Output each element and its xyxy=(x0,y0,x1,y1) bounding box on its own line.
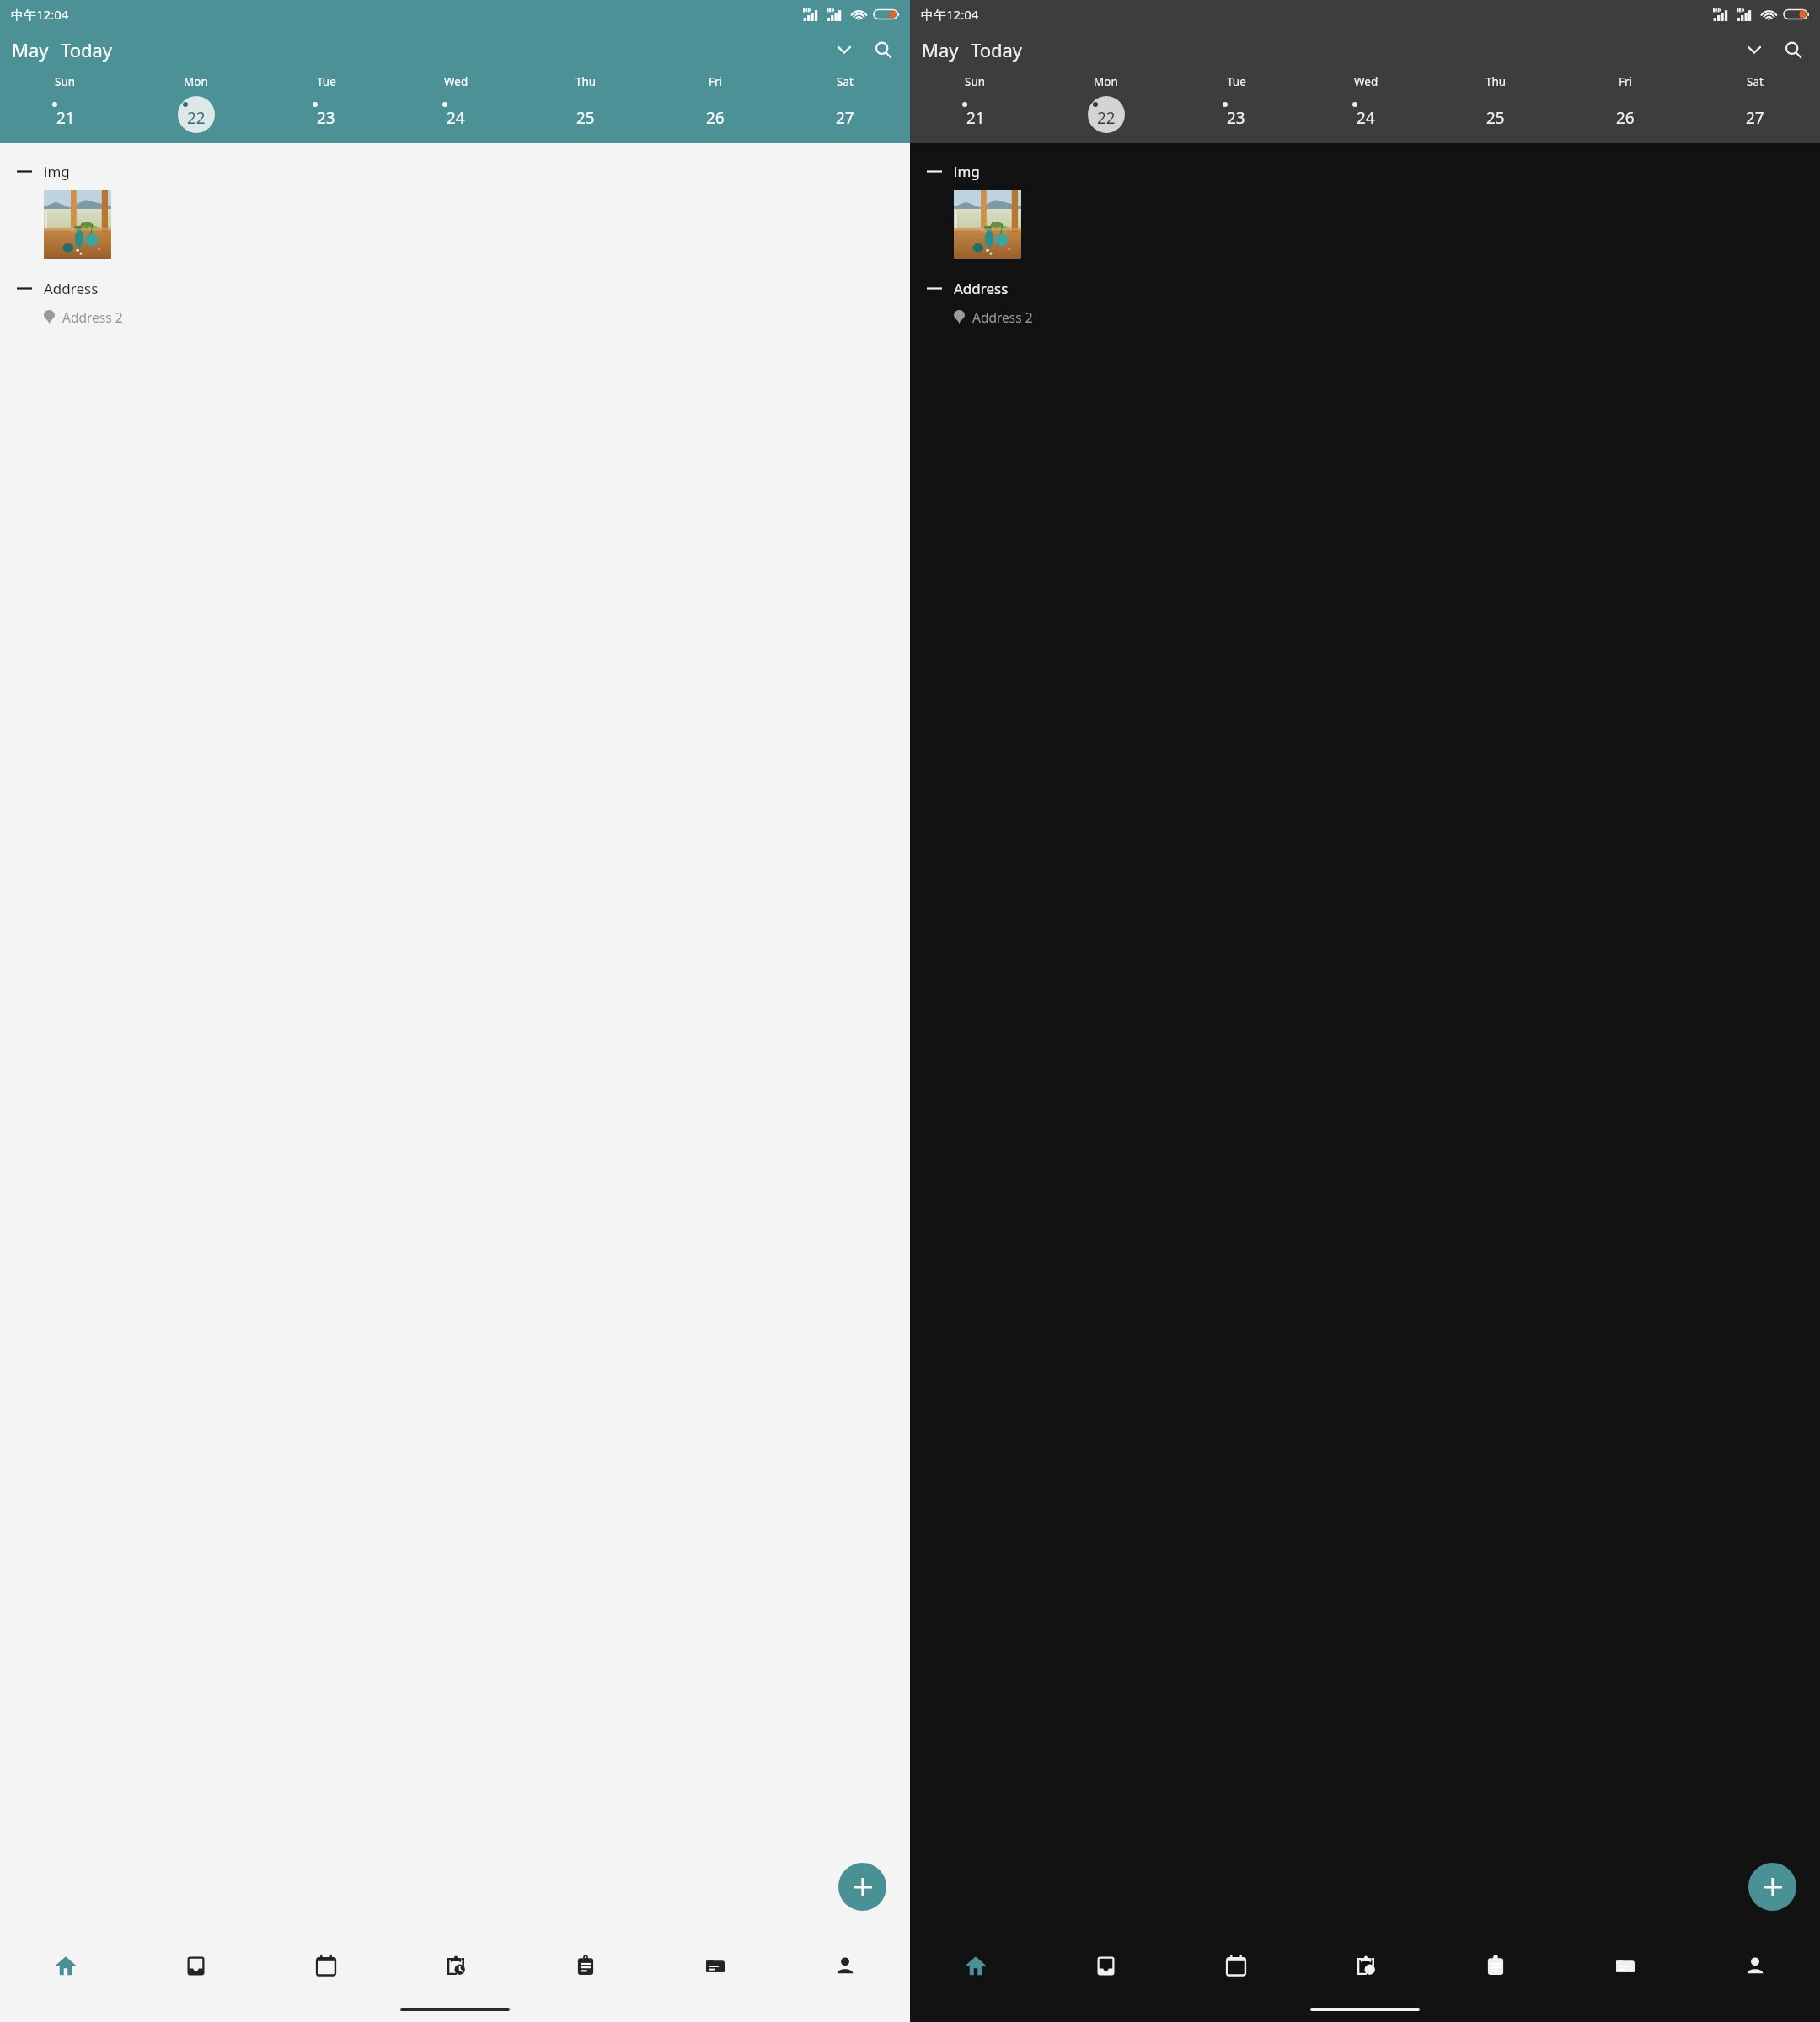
staticText: Sun xyxy=(55,74,76,89)
button[interactable]: Address xyxy=(0,277,910,300)
button[interactable]: 27 xyxy=(1690,94,1820,135)
staticText: Wed xyxy=(444,74,468,89)
button[interactable]: Address 2 xyxy=(0,307,910,328)
staticText: Today xyxy=(61,37,113,62)
staticText: 22 xyxy=(1097,107,1116,129)
button[interactable]: Add event xyxy=(1748,1863,1796,1911)
button[interactable]: 27 xyxy=(780,94,910,135)
staticText: 25 xyxy=(1486,107,1505,129)
staticText: Mon xyxy=(1094,74,1118,89)
staticText: 27 xyxy=(1746,107,1764,129)
button[interactable]: 25 xyxy=(1431,94,1560,135)
button[interactable]: Expand calendar xyxy=(827,33,861,67)
staticText: Fri xyxy=(1619,74,1633,89)
button[interactable]: Calendar xyxy=(261,1934,391,1997)
staticText: 23 xyxy=(317,107,335,129)
button[interactable]: 23 xyxy=(261,94,391,135)
staticText: 26 xyxy=(1616,107,1635,129)
button[interactable]: 22 xyxy=(131,94,261,135)
button[interactable]: Search xyxy=(866,33,900,67)
staticText: Tue xyxy=(317,74,336,89)
button[interactable]: 26 xyxy=(650,94,780,135)
staticText: Sat xyxy=(837,74,854,89)
staticText: 中午12:04 xyxy=(921,6,979,23)
button[interactable]: Search xyxy=(1776,33,1810,67)
button[interactable]: 21 xyxy=(910,94,1041,135)
staticText: 27 xyxy=(836,107,854,129)
staticText: Tue xyxy=(1227,74,1246,89)
button[interactable]: 24 xyxy=(1301,94,1431,135)
button[interactable]: 26 xyxy=(1560,94,1690,135)
staticText: 21 xyxy=(966,107,985,129)
button[interactable]: Inbox xyxy=(131,1934,261,1997)
button[interactable]: May xyxy=(920,37,1025,62)
button[interactable]: Profile xyxy=(780,1934,910,1997)
staticText: Mon xyxy=(184,74,208,89)
staticText: 24 xyxy=(447,107,465,129)
button[interactable]: Pending tasks xyxy=(1301,1934,1431,1997)
staticText: Address 2 xyxy=(972,308,1033,326)
button[interactable] xyxy=(44,190,111,259)
button[interactable]: 23 xyxy=(1171,94,1301,135)
button[interactable]: 24 xyxy=(391,94,521,135)
button[interactable]: Address xyxy=(910,277,1820,300)
staticText: Fri xyxy=(709,74,723,89)
staticText: Today xyxy=(971,37,1023,62)
button[interactable]: img xyxy=(0,155,910,183)
staticText: 中午12:04 xyxy=(11,6,69,23)
staticText: Address xyxy=(44,279,99,298)
button[interactable]: Files xyxy=(650,1934,780,1997)
staticText: 22 xyxy=(187,107,206,129)
staticText: May xyxy=(922,37,959,62)
staticText: Sun xyxy=(965,74,986,89)
button[interactable]: img xyxy=(910,155,1820,183)
button[interactable]: 25 xyxy=(521,94,650,135)
button[interactable]: Tasks xyxy=(1431,1934,1560,1997)
staticText: img xyxy=(44,162,70,181)
button[interactable]: Expand calendar xyxy=(1737,33,1771,67)
staticText: 24 xyxy=(1357,107,1375,129)
button[interactable]: Home xyxy=(0,1934,131,1997)
button[interactable]: Address 2 xyxy=(910,307,1820,328)
staticText: Address 2 xyxy=(62,308,123,326)
button[interactable]: Add event xyxy=(838,1863,886,1911)
button[interactable] xyxy=(954,190,1021,259)
staticText: Wed xyxy=(1354,74,1378,89)
staticText: Sat xyxy=(1747,74,1764,89)
staticText: May xyxy=(12,37,49,62)
button[interactable]: Tasks xyxy=(521,1934,650,1997)
button[interactable]: 22 xyxy=(1041,94,1171,135)
button[interactable]: Home xyxy=(910,1934,1041,1997)
button[interactable]: Files xyxy=(1560,1934,1690,1997)
button[interactable]: 21 xyxy=(0,94,131,135)
staticText: 26 xyxy=(706,107,725,129)
button[interactable]: Pending tasks xyxy=(391,1934,521,1997)
staticText: Thu xyxy=(575,74,597,89)
button[interactable]: Inbox xyxy=(1041,1934,1171,1997)
button[interactable]: Profile xyxy=(1690,1934,1820,1997)
staticText: Address xyxy=(954,279,1009,298)
staticText: 23 xyxy=(1227,107,1245,129)
button[interactable]: Calendar xyxy=(1171,1934,1301,1997)
staticText: 25 xyxy=(576,107,595,129)
button[interactable]: May xyxy=(10,37,115,62)
staticText: Thu xyxy=(1485,74,1507,89)
staticText: 21 xyxy=(56,107,75,129)
staticText: img xyxy=(954,162,980,181)
